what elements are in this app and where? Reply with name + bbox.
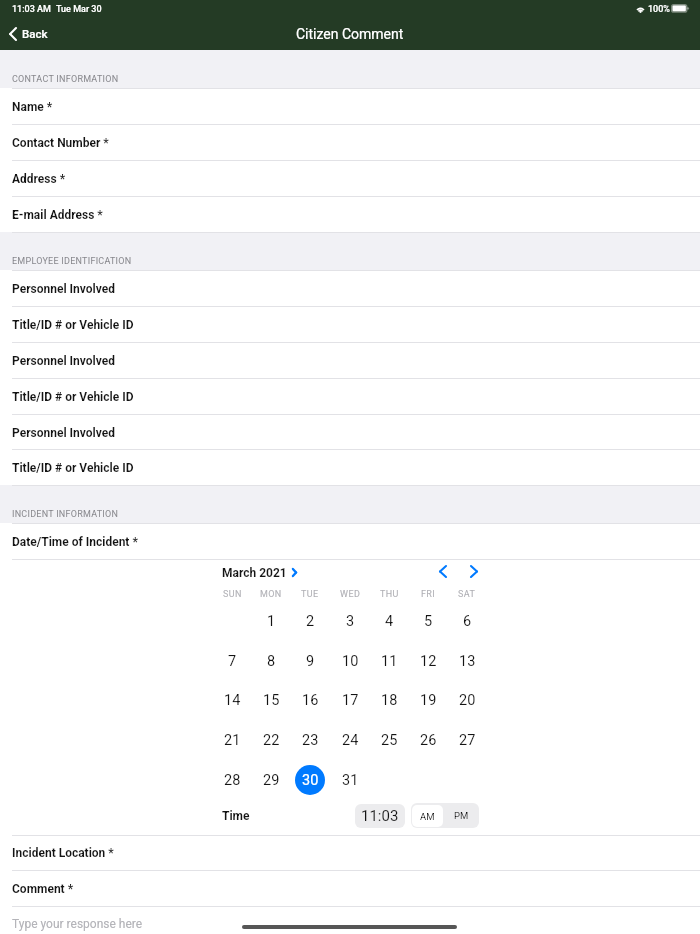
staticText: 27 — [459, 732, 476, 749]
staticText: PM — [454, 810, 469, 821]
button[interactable]: E-mail Address * — [0, 196, 700, 232]
button[interactable]: 11:03 — [355, 804, 405, 828]
button[interactable]: 22 — [254, 723, 288, 757]
button[interactable]: Previous month — [431, 557, 455, 586]
button[interactable]: 24 — [333, 723, 367, 757]
button[interactable]: Date/Time of Incident * — [0, 523, 700, 559]
button[interactable]: 25 — [372, 723, 406, 757]
staticText: 15 — [263, 692, 280, 709]
button[interactable]: Next month — [462, 557, 486, 586]
button[interactable]: 7 — [215, 644, 249, 678]
button[interactable]: 9 — [293, 644, 327, 678]
staticText: 14 — [224, 692, 241, 709]
button[interactable]: 8 — [254, 644, 288, 678]
button[interactable]: Title/ID # or Vehicle ID — [0, 306, 700, 342]
staticText: Citizen Comment — [296, 26, 404, 42]
staticText: March 2021 — [222, 566, 287, 580]
staticText: Title/ID # or Vehicle ID — [12, 318, 134, 332]
staticText: 31 — [342, 772, 359, 789]
button[interactable]: 20 — [450, 683, 484, 717]
button[interactable]: 3 — [333, 604, 367, 638]
staticText: 20 — [459, 692, 476, 709]
staticText: THU — [380, 589, 399, 600]
staticText: 5 — [424, 613, 433, 630]
button[interactable]: 1 — [254, 604, 288, 638]
button[interactable]: 31 — [333, 763, 367, 797]
staticText: 22 — [263, 732, 280, 749]
staticText: INCIDENT INFORMATION — [12, 509, 119, 520]
button[interactable]: 4 — [372, 604, 406, 638]
button[interactable]: PM — [444, 803, 479, 828]
button[interactable]: 17 — [333, 683, 367, 717]
button[interactable]: 18 — [372, 683, 406, 717]
staticText: 3 — [346, 613, 355, 630]
button[interactable]: 27 — [450, 723, 484, 757]
staticText: 24 — [342, 732, 359, 749]
button[interactable]: March 2021 — [216, 562, 303, 583]
staticText: WED — [340, 589, 361, 600]
button[interactable]: 19 — [411, 683, 445, 717]
staticText: 2 — [306, 613, 315, 630]
staticText: Personnel Involved — [12, 426, 115, 440]
button[interactable]: 5 — [411, 604, 445, 638]
staticText: Type your response here — [12, 917, 143, 931]
button[interactable]: Comment * — [0, 870, 700, 906]
button[interactable]: 15 — [254, 683, 288, 717]
button[interactable]: 28 — [215, 763, 249, 797]
staticText: 12 — [420, 653, 437, 670]
staticText: 1 — [267, 613, 276, 630]
button[interactable]: 16 — [293, 683, 327, 717]
staticText: Tue Mar 30 — [56, 4, 102, 15]
button[interactable]: 29 — [254, 763, 288, 797]
button[interactable]: 13 — [450, 644, 484, 678]
button[interactable]: 11 — [372, 644, 406, 678]
button[interactable]: 2 — [293, 604, 327, 638]
button[interactable]: 10 — [333, 644, 367, 678]
button[interactable]: Name * — [0, 88, 700, 124]
staticText: Back — [22, 27, 48, 40]
staticText: 28 — [224, 772, 241, 789]
button[interactable]: Back — [4, 21, 53, 46]
button[interactable]: Personnel Involved — [0, 270, 700, 306]
button[interactable]: AM — [412, 805, 443, 827]
button[interactable]: 30 — [293, 763, 327, 797]
button[interactable]: Type your response here — [0, 906, 700, 934]
staticText: 29 — [263, 772, 280, 789]
staticText: 11:03 — [361, 807, 399, 825]
staticText: 26 — [420, 732, 437, 749]
staticText: Contact Number * — [12, 136, 109, 150]
button[interactable]: 23 — [293, 723, 327, 757]
button[interactable]: Title/ID # or Vehicle ID — [0, 449, 700, 485]
button[interactable]: 14 — [215, 683, 249, 717]
staticText: Incident Location * — [12, 846, 114, 860]
staticText: EMPLOYEE IDENTIFICATION — [12, 256, 132, 267]
staticText: Title/ID # or Vehicle ID — [12, 461, 134, 475]
staticText: 19 — [420, 692, 437, 709]
staticText: Title/ID # or Vehicle ID — [12, 390, 134, 404]
button[interactable]: Incident Location * — [0, 834, 700, 870]
button[interactable]: Personnel Involved — [0, 414, 700, 450]
staticText: 23 — [302, 732, 319, 749]
staticText: 30 — [302, 772, 319, 789]
button[interactable]: 6 — [450, 604, 484, 638]
button[interactable]: Personnel Involved — [0, 342, 700, 378]
staticText: SUN — [223, 589, 242, 600]
staticText: Comment * — [12, 882, 74, 896]
button[interactable]: 12 — [411, 644, 445, 678]
staticText: CONTACT INFORMATION — [12, 74, 119, 85]
button[interactable]: 21 — [215, 723, 249, 757]
staticText: Name * — [12, 100, 53, 114]
button[interactable]: Contact Number * — [0, 124, 700, 160]
staticText: 6 — [463, 613, 472, 630]
staticText: 17 — [342, 692, 359, 709]
staticText: 25 — [381, 732, 398, 749]
staticText: Personnel Involved — [12, 282, 115, 296]
staticText: SAT — [458, 589, 476, 600]
staticText: 21 — [224, 732, 241, 749]
staticText: Personnel Involved — [12, 354, 115, 368]
staticText: 13 — [459, 653, 476, 670]
button[interactable]: 26 — [411, 723, 445, 757]
staticText: 11:03 AM — [12, 4, 51, 15]
button[interactable]: Address * — [0, 160, 700, 196]
button[interactable]: Title/ID # or Vehicle ID — [0, 378, 700, 414]
